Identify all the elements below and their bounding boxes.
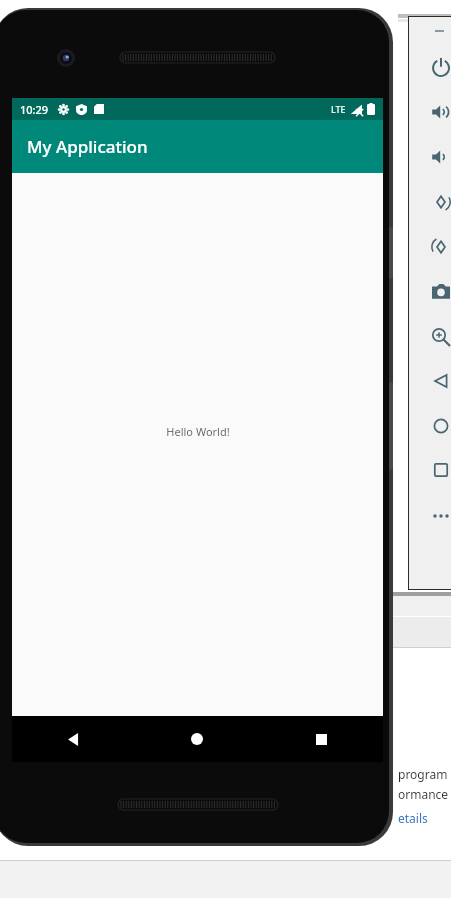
button[interactable]: Rotate right (425, 231, 451, 263)
button[interactable]: Zoom (425, 321, 451, 353)
button[interactable]: Minimize (429, 25, 449, 36)
staticText: ormance (398, 786, 449, 802)
staticText: program (398, 766, 448, 782)
button[interactable]: Volume up (425, 96, 451, 128)
button[interactable]: Overview (425, 454, 451, 486)
button[interactable]: More (425, 500, 451, 532)
button[interactable]: Back (12, 716, 135, 762)
button[interactable]: Back (425, 365, 451, 397)
staticText: Hello World! (166, 424, 230, 439)
button[interactable]: Volume down (425, 141, 451, 173)
button[interactable]: Take screenshot (425, 276, 451, 308)
button[interactable]: Power (425, 51, 451, 83)
button[interactable]: etails (398, 810, 428, 826)
button[interactable]: Recent apps (259, 716, 383, 762)
button[interactable]: Home (425, 410, 451, 442)
button[interactable]: Home (135, 716, 259, 762)
staticText: 10:29 (20, 102, 49, 117)
button[interactable]: Rotate left (425, 186, 451, 218)
staticText: My Application (27, 135, 148, 158)
staticText: LTE (331, 103, 346, 115)
